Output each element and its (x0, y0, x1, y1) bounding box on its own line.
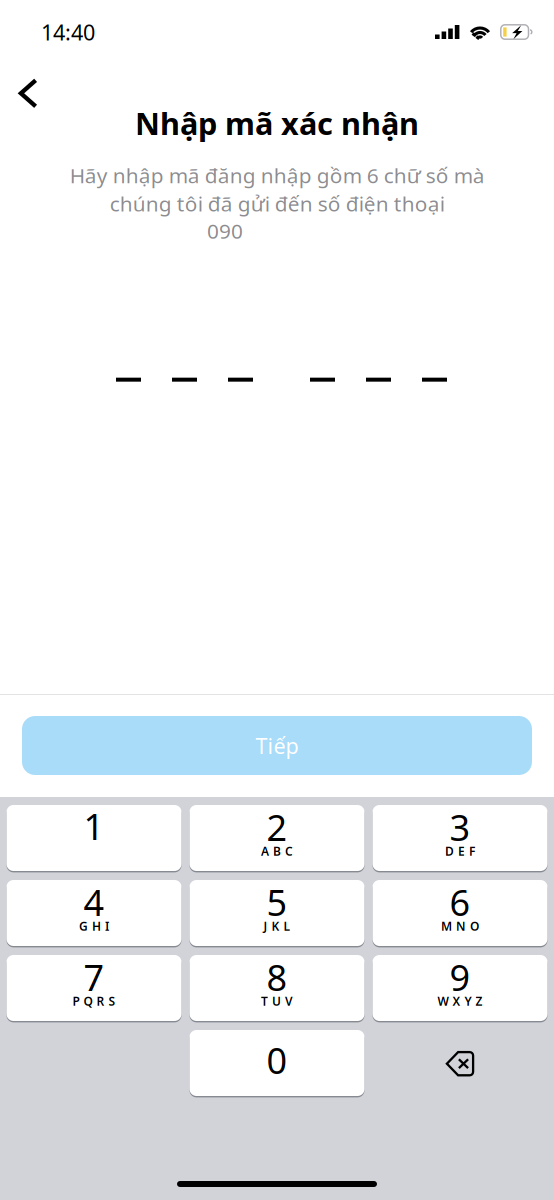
staticText: 9 (449, 953, 470, 1001)
staticText: 2 (266, 803, 287, 851)
staticText: 090 (207, 216, 243, 245)
staticText: 8 (266, 953, 287, 1001)
staticText: T U V (261, 993, 293, 1009)
staticText: Nhập mã xác nhận (135, 103, 419, 143)
button[interactable]: Delete (372, 1031, 547, 1097)
staticText: 4 (83, 878, 104, 926)
button[interactable]: 3 (372, 805, 547, 872)
button[interactable]: 2 (189, 805, 364, 872)
button[interactable]: 7 (6, 955, 181, 1022)
button[interactable]: 5 (189, 880, 364, 947)
staticText: 0 (266, 1036, 287, 1084)
staticText: W X Y Z (437, 993, 482, 1009)
button[interactable]: Tiếp (22, 716, 532, 775)
staticText: G H I (79, 918, 109, 934)
staticText: D E F (445, 843, 475, 859)
button[interactable]: 4 (6, 880, 181, 947)
staticText: J K L (263, 918, 290, 934)
button[interactable]: 9 (372, 955, 547, 1022)
staticText: 14:40 (41, 17, 95, 47)
button[interactable]: Back (0, 0, 56, 140)
staticText: 5 (266, 878, 287, 926)
button[interactable]: 0 (189, 1030, 364, 1097)
staticText: A B C (261, 843, 293, 859)
staticText: 3 (449, 803, 470, 851)
button[interactable]: 6 (372, 880, 547, 947)
button[interactable]: 1 (6, 805, 181, 872)
staticText: 1 (83, 802, 104, 850)
staticText: M N O (441, 918, 479, 934)
button[interactable]: 8 (189, 955, 364, 1022)
staticText: 6 (449, 878, 470, 926)
staticText: 7 (83, 953, 104, 1001)
staticText: P Q R S (72, 993, 115, 1009)
staticText: Tiếp (255, 731, 298, 760)
staticText: Hãy nhập mã đăng nhập gồm 6 chữ số mà ch… (69, 161, 484, 218)
